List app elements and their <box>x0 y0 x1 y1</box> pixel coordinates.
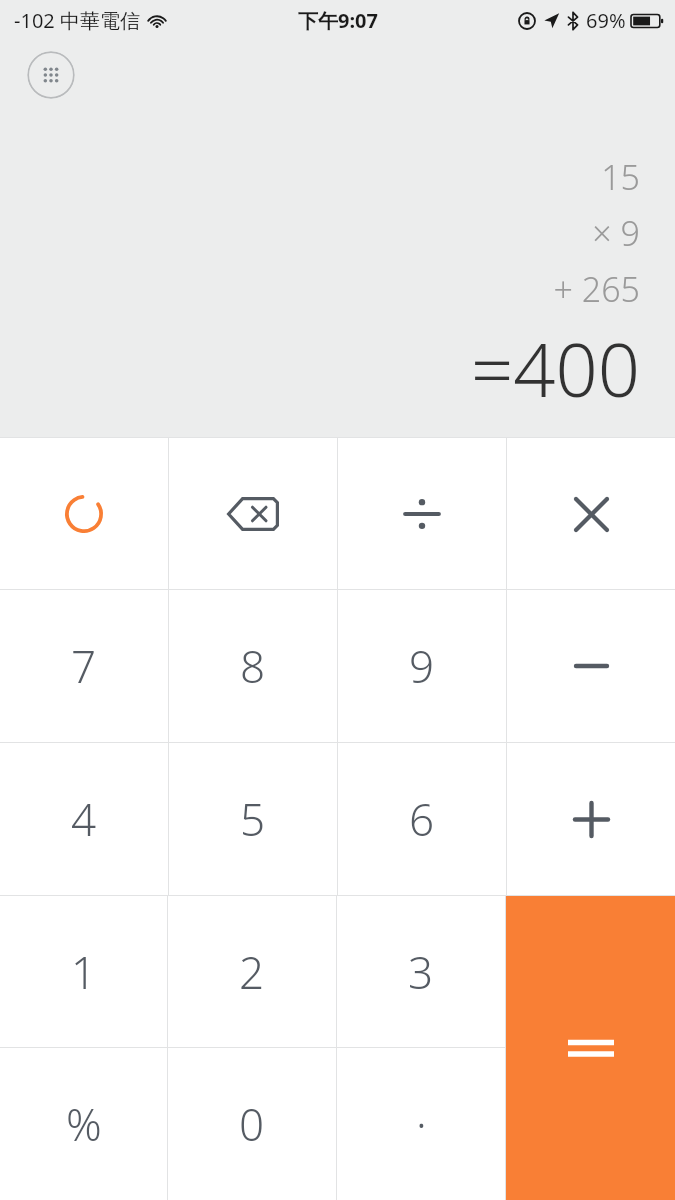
other: Divide <box>392 484 452 544</box>
staticText: · <box>416 1094 427 1154</box>
staticText: 下午9:07 <box>298 7 378 34</box>
staticText: 15 <box>601 154 640 200</box>
button[interactable]: 3 <box>337 896 505 1047</box>
staticText: 5 <box>240 789 266 849</box>
button[interactable]: 1 <box>0 896 167 1047</box>
staticText: 0 <box>239 1094 265 1154</box>
button[interactable]: Minus <box>507 590 675 742</box>
button[interactable]: Divide <box>338 438 506 589</box>
button[interactable]: % <box>0 1048 167 1200</box>
button[interactable]: · <box>337 1048 505 1200</box>
button[interactable]: 5 <box>169 743 337 895</box>
other: Backspace <box>222 483 284 545</box>
button[interactable]: Multiply <box>507 438 675 589</box>
button[interactable]: 8 <box>169 590 337 742</box>
staticText: 1 <box>71 942 97 1002</box>
staticText: × 9 <box>592 210 640 256</box>
staticText: 8 <box>240 636 266 696</box>
button[interactable]: Clear <box>0 438 168 589</box>
staticText: 3 <box>408 942 434 1002</box>
button[interactable]: Equals <box>506 896 675 1200</box>
button[interactable]: Backspace <box>169 438 337 589</box>
button[interactable]: 7 <box>0 590 168 742</box>
staticText: 9 <box>409 636 435 696</box>
button[interactable]: 4 <box>0 743 168 895</box>
other: Minus <box>561 636 621 696</box>
staticText: 2 <box>239 942 265 1002</box>
other: Clear <box>54 484 114 544</box>
button[interactable]: 0 <box>168 1048 336 1200</box>
staticText: 6 <box>409 789 435 849</box>
button[interactable]: 2 <box>168 896 336 1047</box>
button[interactable]: 6 <box>338 743 506 895</box>
staticText: =400 <box>470 318 640 419</box>
staticText: + 265 <box>553 266 640 312</box>
button[interactable]: Plus <box>507 743 675 895</box>
other: Multiply <box>561 484 621 544</box>
staticText: 69% <box>586 7 626 34</box>
staticText: -102 中華電信 <box>14 7 140 34</box>
button[interactable]: Apps <box>27 51 75 99</box>
other: Plus <box>561 789 621 849</box>
staticText: % <box>66 1094 102 1154</box>
staticText: 7 <box>71 636 97 696</box>
staticText: 4 <box>71 789 97 849</box>
button[interactable]: 9 <box>338 590 506 742</box>
